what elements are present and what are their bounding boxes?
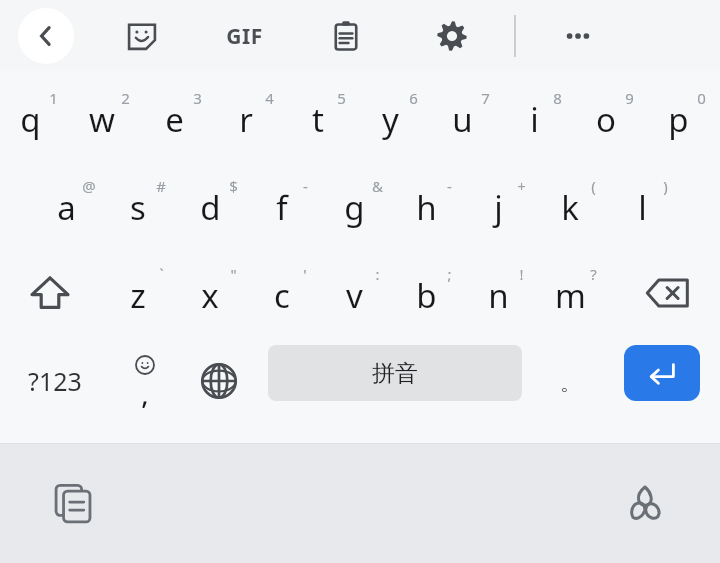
staticText: 7 <box>481 88 490 108</box>
button[interactable]: More options <box>546 8 610 64</box>
button[interactable]: q <box>0 71 72 159</box>
button[interactable]: a <box>36 159 108 247</box>
staticText: n <box>488 273 509 318</box>
button[interactable]: w <box>72 71 144 159</box>
button[interactable]: r <box>216 71 288 159</box>
staticText: k <box>561 185 579 230</box>
button[interactable]: Backspace <box>616 247 720 335</box>
staticText: 0 <box>697 88 706 108</box>
button[interactable]: f <box>252 159 324 247</box>
button[interactable]: ?123 <box>0 335 110 423</box>
staticText: + <box>517 176 526 196</box>
staticText: 5 <box>337 88 346 108</box>
button[interactable]: d <box>180 159 252 247</box>
staticText: # <box>156 176 166 196</box>
staticText: a <box>57 185 76 230</box>
button[interactable]: Enter <box>624 345 700 401</box>
staticText: s <box>130 185 146 230</box>
staticText: : <box>375 264 380 284</box>
staticText: @ <box>82 176 96 196</box>
button[interactable]: v <box>324 247 396 335</box>
button[interactable]: Stickers <box>110 8 174 64</box>
staticText: w <box>89 97 115 142</box>
staticText: x <box>201 273 219 318</box>
staticText: - <box>303 176 308 196</box>
button[interactable]: GIF <box>212 8 276 64</box>
staticText: ( <box>591 176 596 196</box>
staticText: GIF <box>226 22 263 51</box>
staticText: ?123 <box>28 364 82 398</box>
staticText: g <box>344 185 365 230</box>
button[interactable]: z <box>108 247 180 335</box>
staticText: j <box>494 185 503 230</box>
staticText: " <box>230 264 237 284</box>
button[interactable]: i <box>504 71 576 159</box>
staticText: d <box>200 185 221 230</box>
staticText: 2 <box>121 88 130 108</box>
button[interactable]: g <box>324 159 396 247</box>
staticText: 4 <box>265 88 274 108</box>
staticText: 拼音 <box>372 359 418 388</box>
button[interactable]: Change keyboard language <box>180 335 258 423</box>
staticText: 1 <box>49 88 58 108</box>
button[interactable]: e <box>144 71 216 159</box>
staticText: c <box>274 273 290 318</box>
staticText: t <box>312 97 324 142</box>
staticText: m <box>555 273 586 318</box>
button[interactable]: Settings <box>420 8 484 64</box>
button[interactable]: o <box>576 71 648 159</box>
button[interactable]: l <box>612 159 684 247</box>
staticText: z <box>130 273 146 318</box>
button[interactable]: Assistant <box>606 466 684 540</box>
staticText: f <box>276 185 288 230</box>
button[interactable]: x <box>180 247 252 335</box>
staticText: p <box>668 97 689 142</box>
staticText: v <box>346 273 363 318</box>
staticText: , <box>141 375 149 412</box>
staticText: ) <box>663 176 668 196</box>
button[interactable]: j <box>468 159 540 247</box>
button[interactable]: y <box>360 71 432 159</box>
button[interactable]: Emoji and comma <box>110 335 180 423</box>
button[interactable]: Copy <box>36 466 114 540</box>
staticText: 6 <box>409 88 418 108</box>
staticText: h <box>416 185 437 230</box>
staticText: 9 <box>625 88 634 108</box>
staticText: q <box>20 97 41 142</box>
staticText: o <box>596 97 616 142</box>
button[interactable]: Shift <box>0 247 100 335</box>
staticText: ` <box>159 264 164 284</box>
button[interactable]: k <box>540 159 612 247</box>
button[interactable]: 拼音 <box>268 345 522 401</box>
staticText: r <box>239 97 253 142</box>
staticText: e <box>165 97 184 142</box>
staticText: $ <box>229 176 238 196</box>
staticText: 8 <box>553 88 562 108</box>
staticText: 3 <box>193 88 202 108</box>
staticText: - <box>447 176 452 196</box>
staticText: ? <box>590 264 597 284</box>
staticText: ! <box>519 264 524 284</box>
staticText: l <box>638 185 647 230</box>
staticText: i <box>530 97 539 142</box>
button[interactable]: s <box>108 159 180 247</box>
staticText: ; <box>447 264 452 284</box>
button[interactable]: Back <box>18 8 74 64</box>
staticText: u <box>452 97 473 142</box>
button[interactable]: c <box>252 247 324 335</box>
button[interactable]: m <box>540 247 612 335</box>
button[interactable]: p <box>648 71 720 159</box>
button[interactable]: Clipboard <box>314 8 378 64</box>
staticText: y <box>382 97 399 142</box>
staticText: & <box>372 176 383 196</box>
button[interactable]: Period <box>530 335 610 423</box>
staticText: ' <box>303 264 307 284</box>
staticText: b <box>416 273 437 318</box>
button[interactable]: b <box>396 247 468 335</box>
staticText: 。 <box>560 370 581 396</box>
button[interactable]: n <box>468 247 540 335</box>
button[interactable]: u <box>432 71 504 159</box>
button[interactable]: t <box>288 71 360 159</box>
button[interactable]: h <box>396 159 468 247</box>
